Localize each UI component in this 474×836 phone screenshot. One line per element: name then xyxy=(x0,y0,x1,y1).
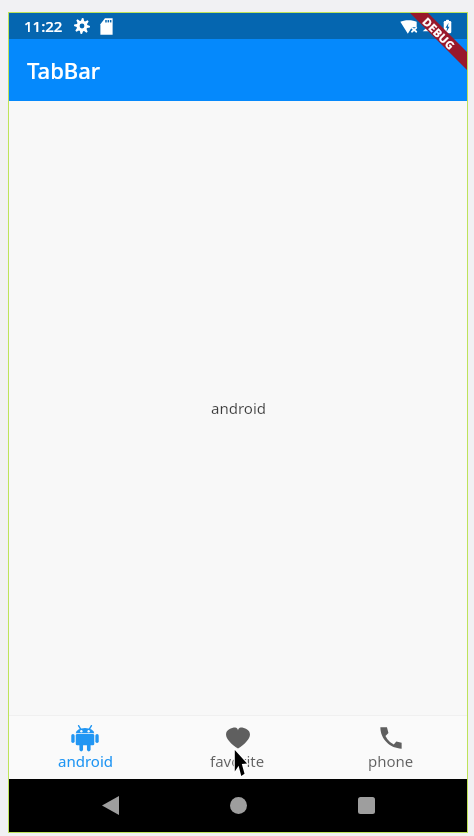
button[interactable]: favorite xyxy=(161,716,314,779)
button[interactable]: Back xyxy=(82,779,138,832)
staticText: TabBar xyxy=(27,55,101,85)
staticText: favorite xyxy=(210,751,265,771)
staticText: android xyxy=(211,398,266,418)
staticText: android xyxy=(58,751,113,771)
button[interactable]: phone xyxy=(314,716,467,779)
button[interactable]: Recent apps xyxy=(338,779,394,832)
button[interactable]: Home xyxy=(210,779,266,832)
staticText: 11:22 xyxy=(24,16,63,36)
button[interactable]: android xyxy=(9,716,161,779)
staticText: DEBUG xyxy=(420,14,458,53)
staticText: phone xyxy=(368,751,414,771)
